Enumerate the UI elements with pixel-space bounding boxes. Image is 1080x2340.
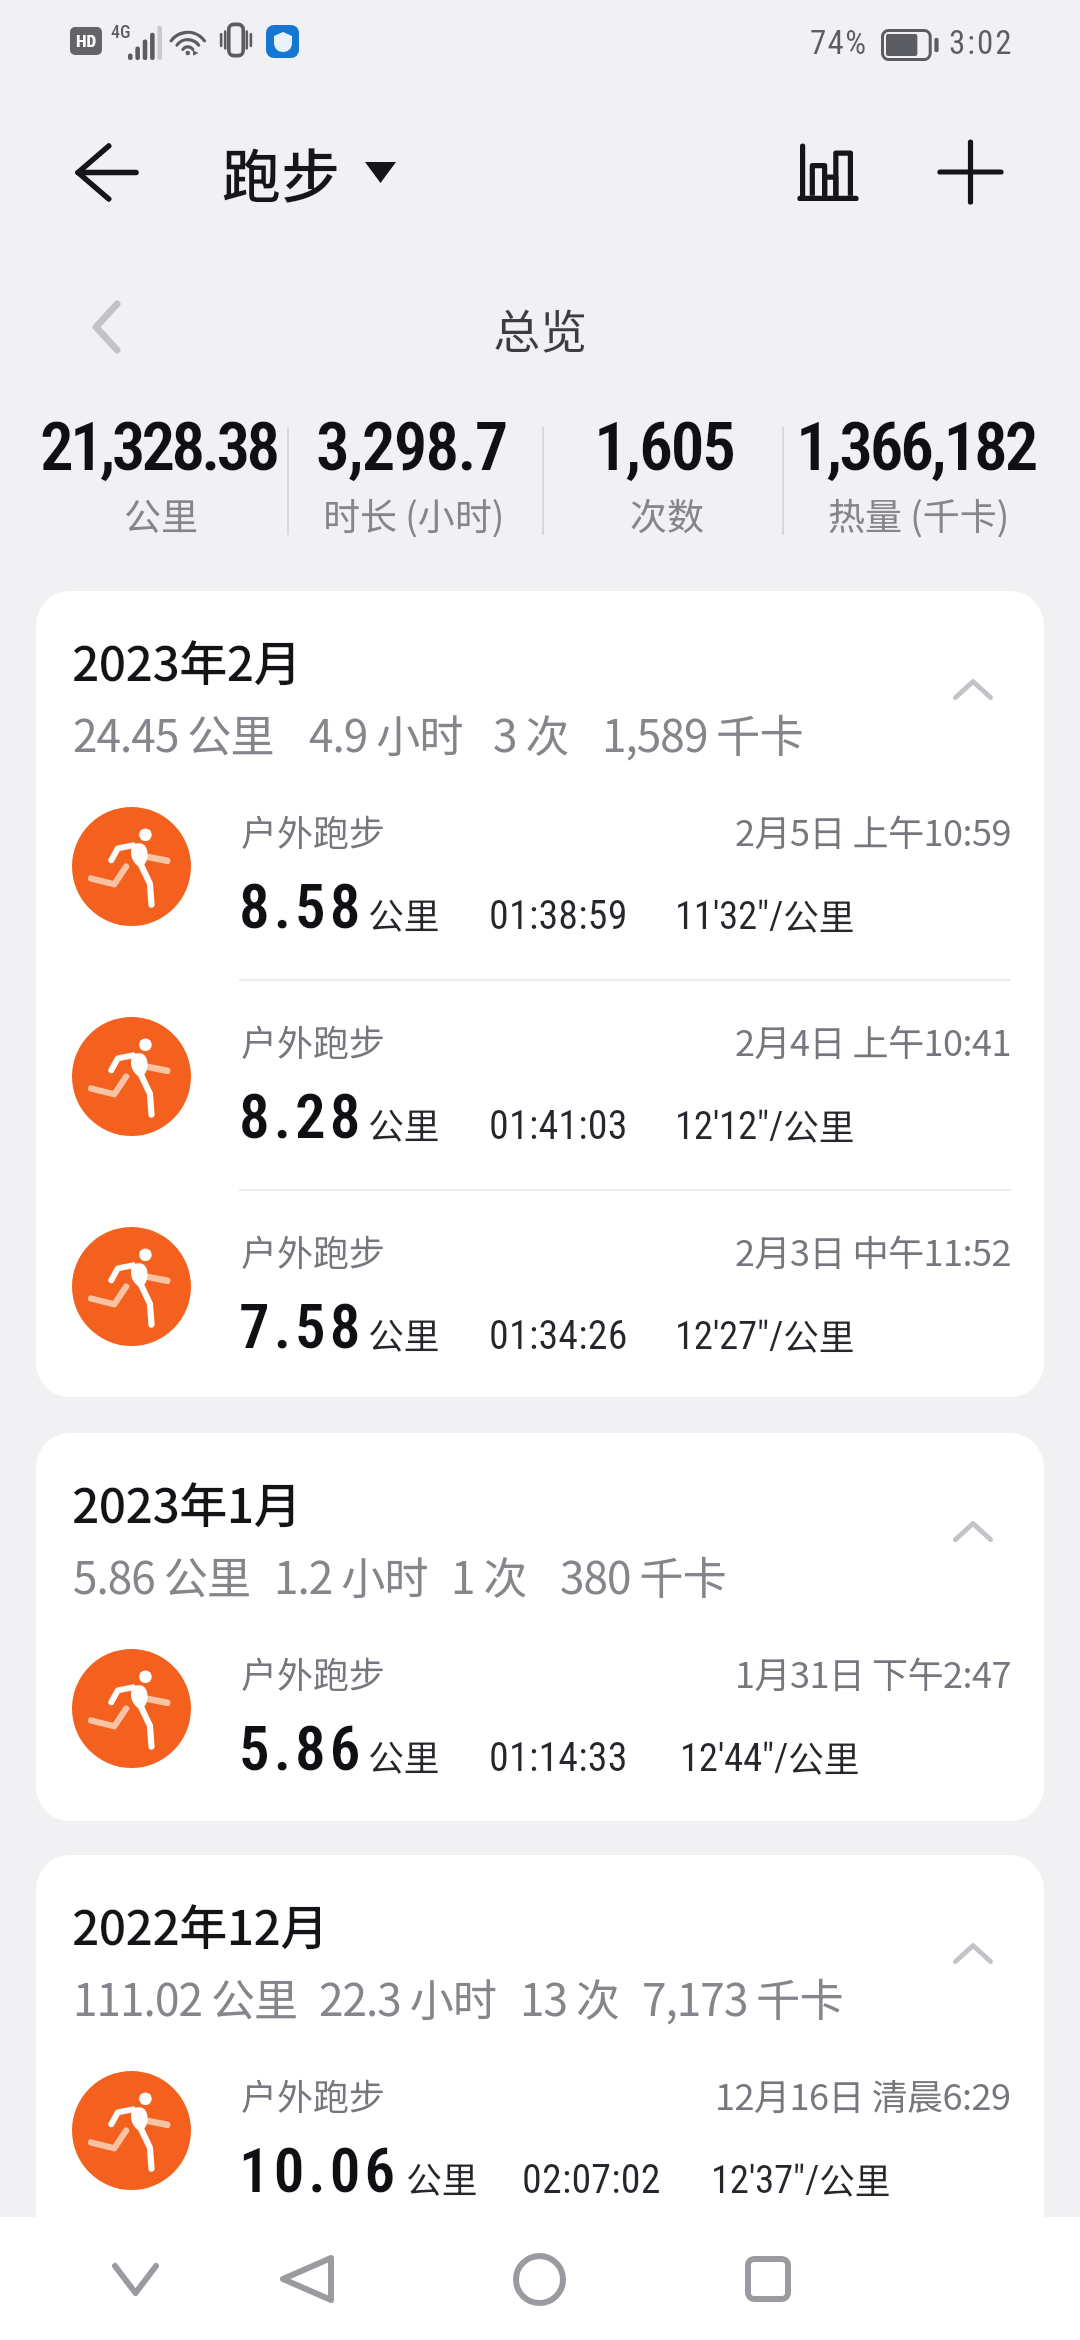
staticText: 公里 [406, 2151, 479, 2203]
staticText: 7,173 千卡 [642, 1965, 843, 2029]
staticText: 公里 [368, 1729, 441, 1781]
staticText: 1,605 [594, 408, 734, 487]
button[interactable]: 户外跑步 [36, 2065, 1044, 2255]
staticText: 4G [111, 21, 131, 42]
button[interactable]: Add [932, 129, 1008, 215]
staticText: 10.06 [239, 2135, 400, 2206]
staticText: 111.02 公里 [73, 1965, 298, 2029]
staticText: 户外跑步 [241, 1646, 386, 1698]
button[interactable]: 户外跑步 [36, 1643, 1044, 1821]
staticText: 12月16日 清晨6:29 [715, 2068, 1011, 2120]
staticText: 12'37"/ [711, 2157, 819, 2203]
staticText: 8.58 [239, 871, 365, 942]
button[interactable]: Statistics [790, 130, 866, 214]
staticText: 2月3日 中午11:52 [735, 1224, 1011, 1276]
staticText: 74% [810, 23, 868, 62]
staticText: 7.58 [239, 1291, 365, 1362]
staticText: 1月31日 下午2:47 [735, 1646, 1011, 1698]
staticText: 1,366,182 [796, 408, 1036, 487]
staticText: 2022年12月 [72, 1889, 328, 1959]
staticText: 01:41:03 [489, 1102, 628, 1149]
staticText: 户外跑步 [241, 1014, 386, 1066]
button[interactable]: Collapse [929, 1911, 1017, 1995]
staticText: 21,328.38 [40, 408, 277, 487]
staticText: 02:07:02 [522, 2156, 661, 2203]
staticText: 4.9 小时 [309, 701, 463, 765]
staticText: 5.86 公里 [73, 1543, 251, 1607]
staticText: 户外跑步 [241, 1224, 386, 1276]
staticText: 22.3 小时 [319, 1965, 497, 2029]
staticText: 01:38:59 [489, 892, 628, 939]
button[interactable]: Collapse [929, 1489, 1017, 1573]
staticText: 24.45 公里 [73, 701, 274, 765]
staticText: 01:34:26 [489, 1312, 628, 1359]
staticText: 户外跑步 [241, 804, 386, 856]
staticText: 3 次 [493, 701, 569, 765]
button[interactable]: Home [484, 2224, 594, 2334]
staticText: 2月4日 上午10:41 [735, 1014, 1011, 1066]
button[interactable]: 户外跑步 [36, 1011, 1044, 1221]
staticText: 1 次 [451, 1543, 527, 1607]
staticText: 公里 [368, 887, 441, 939]
button[interactable]: Collapse [929, 647, 1017, 731]
staticText: 次数 [630, 487, 704, 541]
staticText: 01:14:33 [489, 1734, 628, 1781]
staticText: 8.28 [239, 1081, 365, 1152]
staticText: 12'27"/ [675, 1313, 783, 1359]
staticText: 5.86 [239, 1713, 365, 1784]
staticText: 2023年1月 [72, 1467, 301, 1537]
button[interactable]: Recents [713, 2224, 823, 2334]
staticText: 总览 [493, 294, 587, 362]
staticText: 公里 [368, 1097, 441, 1149]
staticText: 380 千卡 [560, 1543, 726, 1607]
staticText: 12'12"/ [675, 1103, 783, 1149]
staticText: 户外跑步 [241, 2068, 386, 2120]
staticText: 2023年2月 [72, 625, 301, 695]
staticText: 公里 [368, 1307, 441, 1359]
staticText: 公里 [124, 487, 198, 541]
staticText: 公里 [783, 1308, 856, 1360]
button[interactable]: Previous [64, 285, 148, 369]
staticText: 热量 (千卡) [828, 487, 1010, 541]
staticText: 11'32"/ [675, 893, 783, 939]
button[interactable]: Back [48, 129, 166, 215]
staticText: 跑步 [222, 130, 341, 215]
staticText: 3,298.7 [316, 408, 507, 487]
staticText: HD [76, 31, 97, 51]
button[interactable]: 户外跑步 [36, 801, 1044, 1011]
staticText: 公里 [788, 1730, 861, 1782]
staticText: 1,589 千卡 [602, 701, 803, 765]
button[interactable]: Back [252, 2224, 362, 2334]
staticText: 公里 [819, 2152, 892, 2204]
staticText: 时长 (小时) [323, 487, 505, 541]
staticText: 公里 [783, 888, 856, 940]
button[interactable]: Hide keyboard [80, 2224, 190, 2334]
button[interactable]: 户外跑步 [36, 1221, 1044, 1397]
staticText: 13 次 [520, 1965, 620, 2029]
button[interactable]: 跑步 [222, 126, 396, 218]
staticText: 2月5日 上午10:59 [735, 804, 1011, 856]
staticText: 公里 [783, 1098, 856, 1150]
staticText: 3:02 [949, 23, 1014, 62]
staticText: 1.2 小时 [274, 1543, 428, 1607]
staticText: 12'44"/ [680, 1735, 788, 1781]
